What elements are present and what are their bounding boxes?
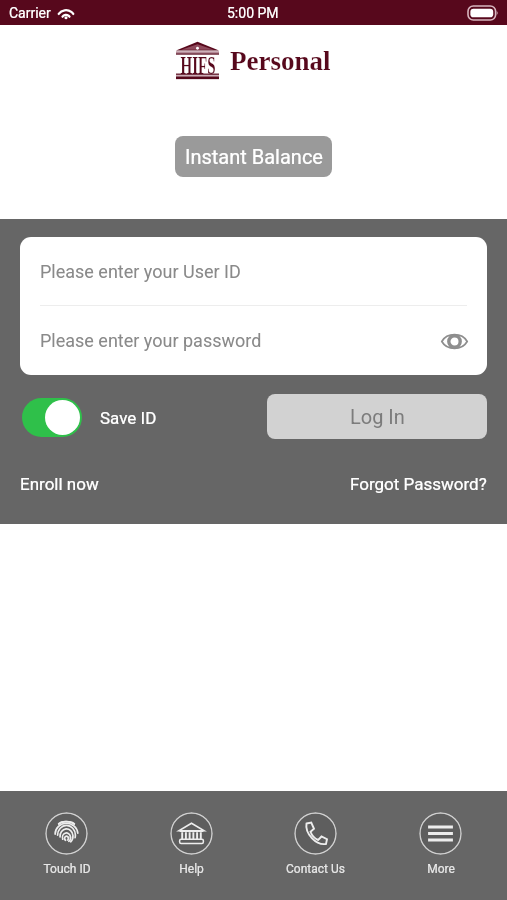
staticText: Personal <box>230 46 331 76</box>
button[interactable]: Please enter your password <box>20 306 487 375</box>
button[interactable]: Instant Balance <box>175 136 332 177</box>
staticText: Enroll now <box>20 474 99 494</box>
button[interactable]: Log In <box>267 394 487 439</box>
staticText: Contact Us <box>286 862 345 876</box>
staticText: Instant Balance <box>185 145 323 168</box>
button[interactable]: Show password <box>439 326 469 356</box>
staticText: Please enter your User ID <box>40 261 241 282</box>
button[interactable]: Enroll now <box>20 474 99 494</box>
staticText: Forgot Password? <box>350 474 487 494</box>
button[interactable]: Save ID <box>22 398 157 437</box>
staticText: Please enter your password <box>40 330 262 351</box>
staticText: Save ID <box>100 408 157 428</box>
staticText: More <box>427 862 455 876</box>
button[interactable]: Forgot Password? <box>350 474 487 494</box>
staticText: HIFS <box>181 52 216 80</box>
button[interactable]: Contact Us <box>258 812 373 876</box>
button[interactable]: Touch ID <box>9 812 124 876</box>
staticText: 5:00 PM <box>227 5 279 21</box>
staticText: Touch ID <box>43 862 91 876</box>
staticText: Help <box>179 862 204 876</box>
button[interactable]: Please enter your User ID <box>20 237 487 305</box>
button[interactable]: More <box>383 812 498 876</box>
staticText: Log In <box>350 405 405 428</box>
staticText: Carrier <box>9 5 51 21</box>
button[interactable]: Help <box>134 812 249 876</box>
